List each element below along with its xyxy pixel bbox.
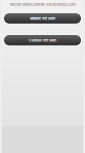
button[interactable]: Mobile version [3,12,82,25]
staticText: Mobile version [30,16,55,21]
button[interactable]: Classic version [3,34,82,47]
staticText: afficher www.comme-korbchersky.com [9,2,75,7]
staticText: Classic version [29,38,56,42]
